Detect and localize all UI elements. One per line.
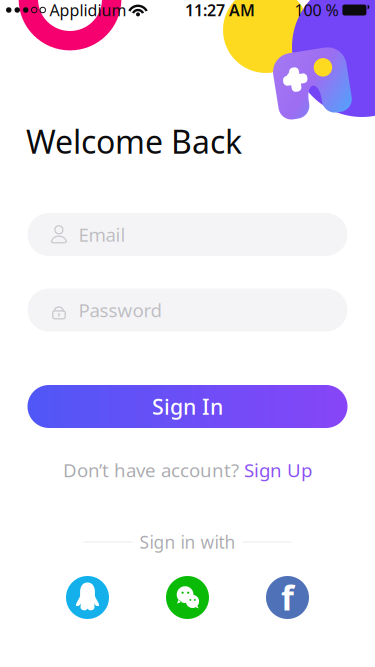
staticText: Sign In (152, 392, 223, 421)
button[interactable]: Sign In (27, 385, 347, 428)
staticText: Sign Up (244, 458, 312, 482)
button[interactable]: Sign in with Facebook (266, 576, 309, 619)
button[interactable]: Password (27, 288, 347, 331)
button[interactable]: Sign in with WeChat (166, 576, 209, 619)
staticText: f (281, 575, 294, 620)
staticText: 11:27 AM (185, 0, 255, 21)
button[interactable]: Sign Up (244, 458, 312, 482)
staticText: Applidium (45, 0, 130, 21)
staticText: Sign in with (139, 530, 235, 553)
staticText: Password (78, 298, 161, 322)
staticText: 100 % (294, 0, 342, 21)
staticText: Email (78, 222, 125, 247)
button[interactable]: Email (27, 213, 347, 256)
staticText: Welcome Back (26, 120, 242, 162)
button[interactable]: Sign in with QQ (66, 576, 109, 619)
staticText: Don’t have account? (63, 458, 244, 482)
